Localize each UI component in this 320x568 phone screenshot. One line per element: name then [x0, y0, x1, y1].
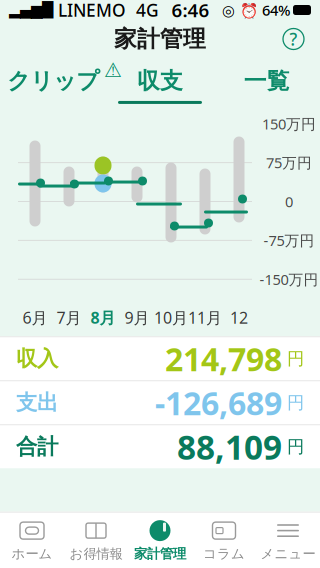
staticText: コラム [203, 546, 245, 562]
staticText: ? [289, 27, 297, 50]
button[interactable]: 収支 [107, 58, 213, 104]
staticText: 150万円 [262, 114, 316, 133]
button[interactable]: 12 [222, 299, 256, 336]
staticText: -126,689 [155, 381, 282, 424]
staticText: 214,798 [165, 337, 282, 380]
button[interactable]: 6月 [18, 299, 52, 336]
button[interactable]: お得情報 [64, 513, 128, 568]
staticText: -150万円 [259, 269, 318, 289]
staticText: 家計管理 [114, 25, 206, 53]
staticText: 円 [282, 436, 304, 457]
staticText: LINEMO 4G [53, 0, 159, 21]
staticText: 10月 [154, 307, 188, 328]
button[interactable]: ホーム [0, 513, 64, 568]
staticText: 75万円 [266, 153, 312, 172]
button[interactable]: 7月 [52, 299, 86, 336]
button[interactable]: メニュー [256, 513, 320, 568]
staticText: 6月 [22, 307, 47, 328]
button[interactable]: 11月 [188, 299, 222, 336]
staticText: 家計管理 [134, 546, 186, 562]
staticText: 11月 [188, 307, 222, 328]
staticText: メニュー [260, 546, 315, 562]
staticText: 円 [282, 348, 304, 369]
staticText: 0 [285, 192, 293, 211]
button[interactable]: 9月 [120, 299, 154, 336]
staticText: ⚠ [104, 59, 122, 81]
staticText: 合計 [16, 434, 58, 460]
staticText: 収入 [16, 346, 58, 372]
staticText: 88,109 [177, 425, 282, 469]
staticText: お得情報 [69, 546, 122, 562]
staticText: 12 [230, 307, 248, 328]
staticText: ◎ ⏰ 64% [222, 0, 290, 20]
staticText: ホーム [11, 546, 52, 562]
staticText: 9月 [124, 307, 149, 328]
button[interactable]: 一覧 [213, 58, 320, 104]
button[interactable]: 8月 [86, 299, 120, 336]
button[interactable]: コラム [192, 513, 256, 568]
staticText: 8月 [90, 307, 115, 328]
staticText: クリップ [7, 67, 99, 95]
staticText: -75万円 [263, 231, 314, 250]
staticText: 支出 [16, 390, 58, 416]
staticText: 円 [282, 392, 304, 413]
staticText: 収支 [137, 67, 183, 95]
button[interactable]: ヘルプ [283, 28, 304, 49]
staticText: 7月 [56, 307, 81, 328]
staticText: ▂▄▆█ [9, 2, 53, 18]
button[interactable]: 家計管理 [128, 513, 192, 568]
staticText: 一覧 [244, 67, 290, 95]
button[interactable]: 10月 [154, 299, 188, 336]
staticText: 6:46 [171, 0, 209, 22]
button[interactable]: クリップ [0, 58, 107, 104]
